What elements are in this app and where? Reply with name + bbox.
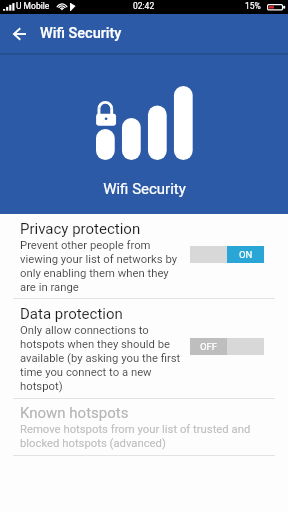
staticText: Wifi Security	[103, 180, 186, 198]
button[interactable]: Privacy protection	[0, 214, 288, 298]
staticText: Privacy protection	[20, 220, 141, 238]
button[interactable]: Data protection	[0, 299, 288, 398]
staticText: 15%	[245, 1, 261, 11]
staticText: Data protection	[20, 305, 123, 323]
staticText: 02:42	[133, 1, 155, 11]
staticText: OFF	[200, 341, 218, 352]
button[interactable]: Known hotspots	[0, 399, 288, 455]
button[interactable]: Back	[0, 14, 38, 53]
button[interactable]: Switch off	[190, 338, 264, 355]
staticText: U Mobile	[16, 1, 50, 11]
staticText: Remove hotspots from your list of truste…	[20, 422, 268, 450]
staticText: ON	[239, 249, 253, 260]
staticText: Prevent other people from viewing your l…	[20, 238, 187, 294]
staticText: Wifi Security	[40, 25, 122, 42]
staticText: Only allow connections to hotspots when …	[20, 323, 187, 393]
button[interactable]: Switch on	[190, 246, 264, 263]
staticText: Known hotspots	[20, 404, 129, 422]
